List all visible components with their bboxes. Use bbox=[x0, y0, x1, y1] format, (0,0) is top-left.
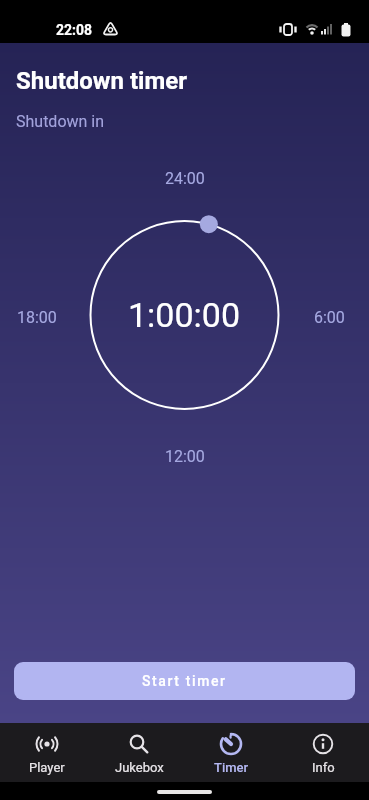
staticText: Start timer bbox=[142, 673, 227, 689]
staticText: 22:08 bbox=[56, 22, 93, 38]
staticText: Info bbox=[312, 760, 335, 775]
staticText: 24:00 bbox=[165, 169, 205, 188]
button[interactable]: Jukebox bbox=[93, 723, 185, 782]
button[interactable]: Info bbox=[277, 723, 369, 782]
staticText: Shutdown in bbox=[16, 112, 105, 131]
button[interactable]: Player bbox=[0, 723, 93, 782]
staticText: 12:00 bbox=[165, 447, 205, 466]
staticText: 1:00:00 bbox=[128, 295, 241, 335]
staticText: Player bbox=[29, 760, 65, 775]
staticText: 18:00 bbox=[17, 308, 57, 327]
staticText: 6:00 bbox=[314, 308, 345, 327]
staticText: Shutdown timer bbox=[16, 67, 187, 95]
button[interactable]: Start timer bbox=[14, 662, 355, 700]
staticText: Timer bbox=[214, 760, 249, 775]
staticText: Jukebox bbox=[115, 760, 164, 775]
button[interactable]: Timer bbox=[185, 723, 277, 782]
